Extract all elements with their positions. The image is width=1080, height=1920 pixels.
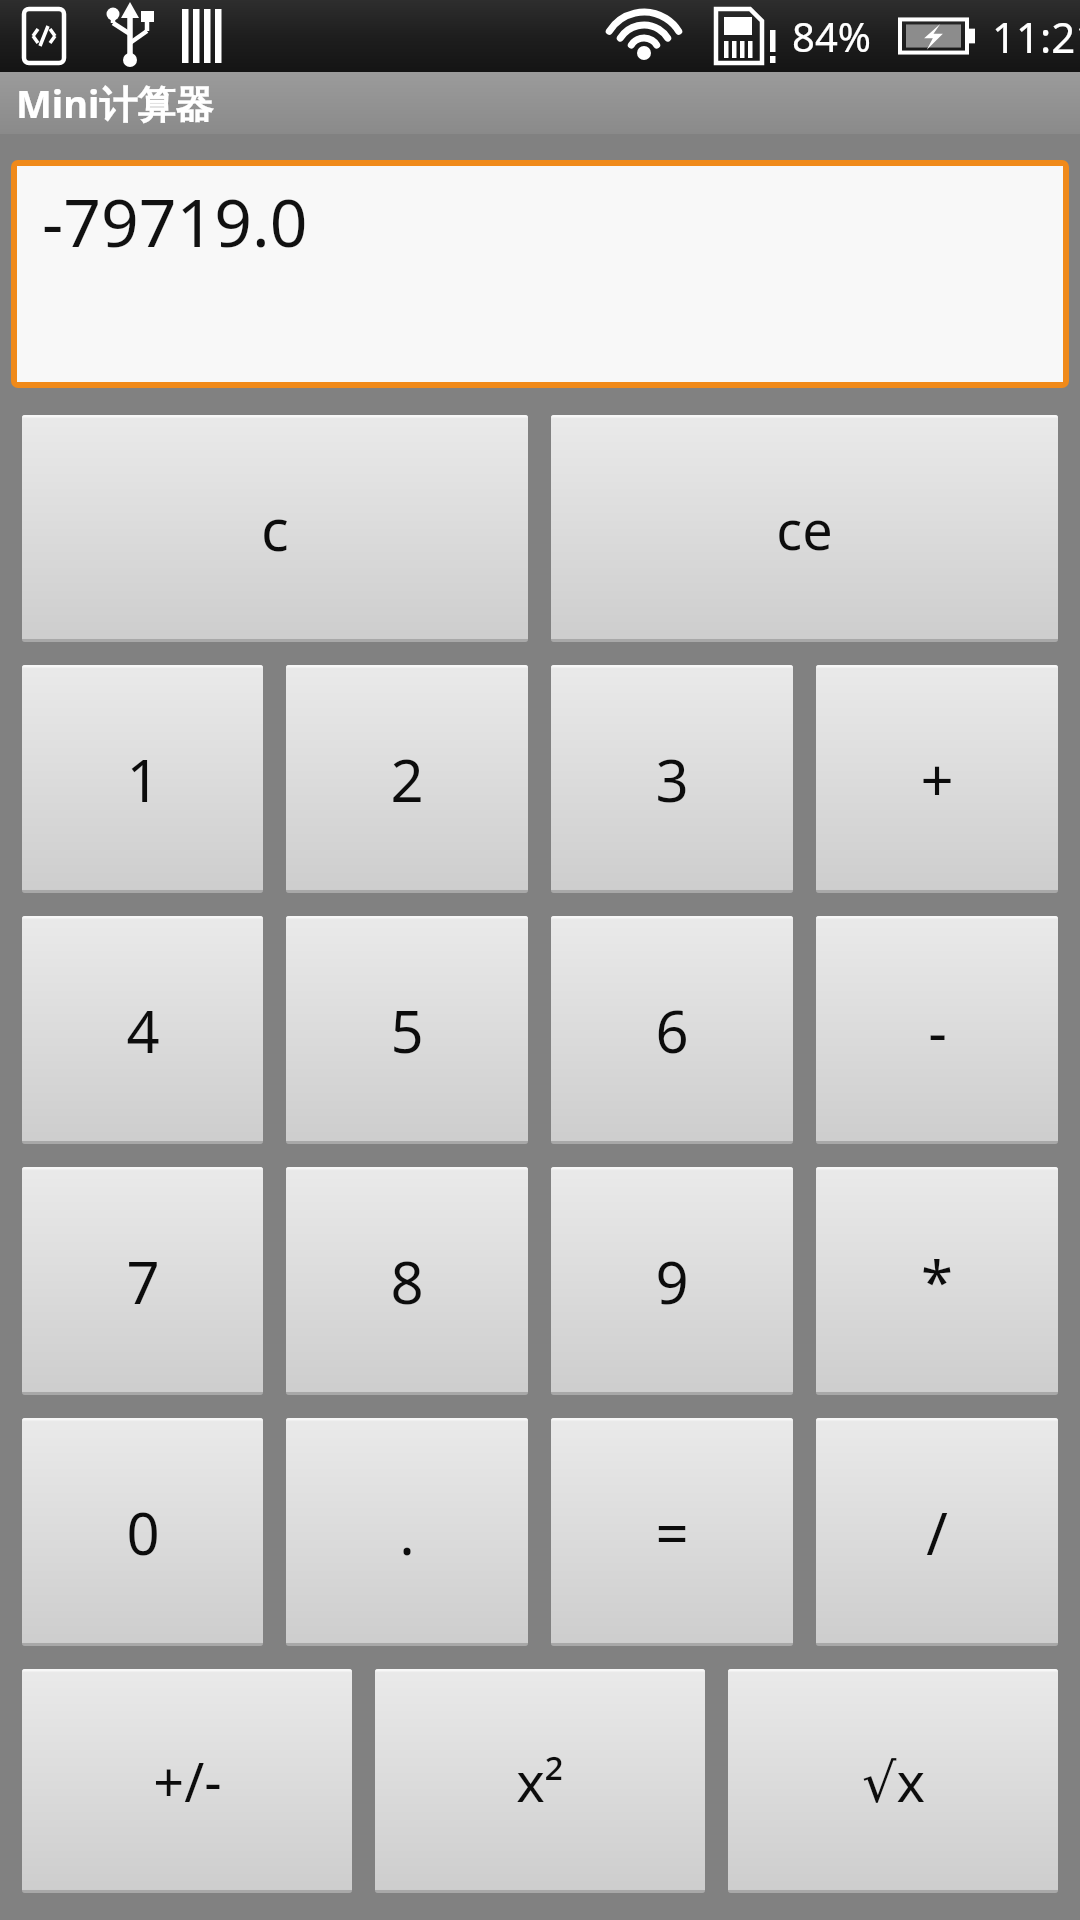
staticText: . — [399, 1493, 415, 1572]
staticText: 9 — [655, 1242, 689, 1321]
button[interactable]: . — [286, 1418, 528, 1646]
staticText: Mini计算器 — [16, 77, 214, 129]
staticText: 2 — [390, 740, 424, 819]
staticText: 7 — [126, 1242, 160, 1321]
button[interactable]: √x — [728, 1669, 1058, 1893]
staticText: +/- — [153, 1744, 222, 1818]
staticText: ce — [776, 492, 833, 566]
button[interactable]: 6 — [551, 916, 793, 1144]
staticText: 5 — [390, 991, 424, 1070]
staticText: 6 — [655, 991, 689, 1070]
button[interactable]: * — [816, 1167, 1058, 1395]
staticText: -79719.0 — [42, 176, 308, 266]
staticText: * — [921, 1242, 953, 1321]
button[interactable]: 3 — [551, 665, 793, 893]
button[interactable]: 2 — [286, 665, 528, 893]
button[interactable]: 4 — [22, 916, 263, 1144]
button[interactable]: 7 — [22, 1167, 263, 1395]
button[interactable]: x² — [375, 1669, 705, 1893]
staticText: = — [655, 1493, 689, 1572]
staticText: c — [261, 489, 289, 568]
button[interactable]: - — [816, 916, 1058, 1144]
staticText: x² — [516, 1744, 564, 1818]
button[interactable]: 1 — [22, 665, 263, 893]
staticText: 0 — [126, 1493, 160, 1572]
button[interactable]: c — [22, 415, 528, 642]
button[interactable]: -79719.0 — [17, 166, 1063, 382]
other: Battery charging — [900, 13, 976, 59]
staticText: 11:21 — [992, 8, 1080, 65]
staticText: / — [926, 1493, 948, 1572]
button[interactable]: ce — [551, 415, 1058, 642]
staticText: + — [920, 740, 954, 819]
button[interactable]: 9 — [551, 1167, 793, 1395]
staticText: 8 — [390, 1242, 424, 1321]
staticText: 4 — [126, 991, 160, 1070]
staticText: 84% — [792, 9, 871, 63]
button[interactable]: + — [816, 665, 1058, 893]
button[interactable]: = — [551, 1418, 793, 1646]
staticText: 3 — [655, 740, 689, 819]
staticText: √x — [862, 1744, 925, 1818]
button[interactable]: +/- — [22, 1669, 352, 1893]
button[interactable]: 5 — [286, 916, 528, 1144]
staticText: - — [928, 991, 947, 1070]
button[interactable]: 0 — [22, 1418, 263, 1646]
button[interactable]: / — [816, 1418, 1058, 1646]
staticText: 1 — [126, 740, 160, 819]
button[interactable]: 8 — [286, 1167, 528, 1395]
